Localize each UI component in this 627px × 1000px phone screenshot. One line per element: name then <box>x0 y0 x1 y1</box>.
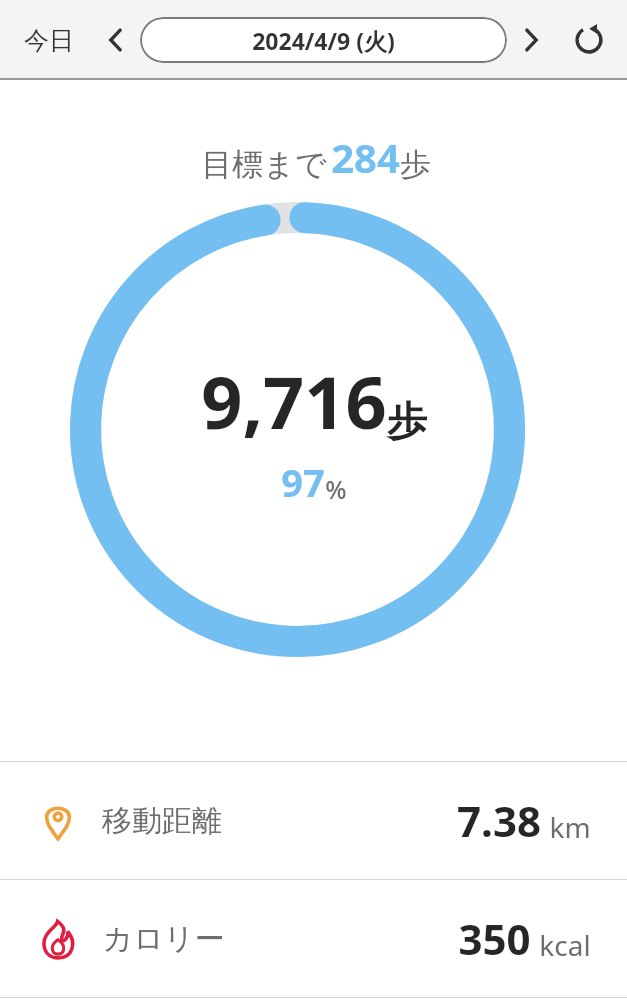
button[interactable]: Previous day <box>94 18 138 62</box>
staticText: 歩 <box>387 396 427 446</box>
button[interactable]: Next day <box>509 18 553 62</box>
staticText: % <box>325 472 347 506</box>
button[interactable]: Distance <box>0 762 627 879</box>
button[interactable]: 今日 <box>14 17 84 64</box>
staticText: カロリー <box>102 920 225 958</box>
staticText: 2024/4/9 (火) <box>252 25 395 56</box>
staticText: 移動距離 <box>102 802 222 840</box>
button[interactable]: 2024/4/9 (火) <box>140 17 507 63</box>
staticText: 目標まで <box>197 142 331 184</box>
staticText: 歩 <box>400 145 431 184</box>
button[interactable]: Calories <box>0 880 627 997</box>
staticText: 9,716 <box>201 352 387 450</box>
staticText: km <box>549 808 591 846</box>
other: Calories <box>36 917 80 961</box>
staticText: 284 <box>331 130 400 184</box>
button[interactable]: Refresh <box>563 14 615 66</box>
other: Distance <box>36 799 80 843</box>
staticText: 今日 <box>24 25 74 56</box>
staticText: 7.38 <box>457 792 541 849</box>
staticText: kcal <box>539 926 591 964</box>
staticText: 350 <box>458 910 531 967</box>
staticText: 97 <box>281 456 325 508</box>
